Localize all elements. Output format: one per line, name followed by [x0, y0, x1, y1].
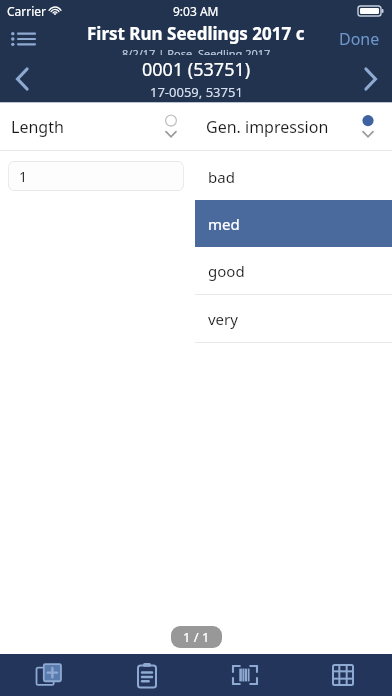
staticText: 1 / 1 — [183, 628, 210, 646]
staticText: 17-0059, 53751 — [150, 83, 243, 101]
button[interactable]: Scan barcode — [196, 654, 294, 696]
staticText: bad — [208, 167, 235, 187]
staticText: First Run Seedlings 2017 c — [87, 22, 305, 45]
staticText: very — [208, 309, 238, 329]
staticText: Length — [11, 116, 64, 138]
button[interactable]: Done — [339, 28, 380, 50]
button[interactable]: Length — [0, 103, 195, 150]
staticText: good — [208, 261, 245, 281]
staticText: 8/2/17 | Rose, Seedling 2017 — [122, 46, 271, 55]
staticText: Gen. impression — [206, 116, 329, 138]
staticText: 9:03 AM — [173, 3, 219, 19]
button[interactable]: Add record — [0, 654, 98, 696]
staticText: 0001 (53751) — [142, 57, 251, 82]
staticText: Done — [339, 28, 380, 50]
staticText: Carrier — [7, 3, 47, 19]
staticText: 1 — [19, 167, 28, 186]
button[interactable]: good — [195, 247, 392, 294]
button[interactable]: med — [195, 200, 392, 247]
button[interactable]: Previous record — [0, 55, 44, 102]
button[interactable]: very — [195, 295, 392, 342]
staticText: med — [208, 214, 240, 234]
button[interactable]: 1 / 1 — [183, 628, 210, 646]
button[interactable]: List menu — [0, 22, 46, 55]
button[interactable]: 1 — [8, 161, 184, 191]
button[interactable]: Notes — [98, 654, 196, 696]
button[interactable]: Grid view — [294, 654, 392, 696]
button[interactable]: Gen. impression — [195, 103, 392, 150]
button[interactable]: Next record — [348, 55, 392, 102]
button[interactable]: bad — [195, 153, 392, 200]
